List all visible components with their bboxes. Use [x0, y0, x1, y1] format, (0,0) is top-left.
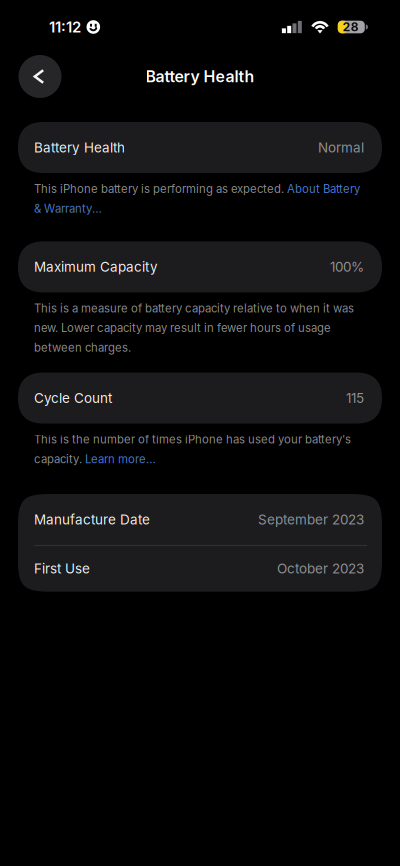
button[interactable]: First Use: [18, 546, 382, 592]
staticText: 11:12: [49, 18, 81, 36]
button[interactable]: Battery Health: [18, 122, 382, 173]
staticText: This is the number of times iPhone has u…: [34, 433, 351, 466]
staticText: 115: [346, 390, 364, 406]
staticText: First Use: [34, 560, 90, 577]
staticText: This iPhone battery is performing as exp…: [34, 182, 360, 215]
staticText: Maximum Capacity: [34, 259, 158, 275]
staticText: This is a measure of battery capacity re…: [34, 301, 354, 354]
staticText: October 2023: [277, 560, 364, 577]
staticText: September 2023: [258, 511, 364, 528]
button[interactable]: Manufacture Date: [18, 494, 382, 545]
staticText: Manufacture Date: [34, 511, 150, 528]
staticText: Battery Health: [145, 67, 254, 86]
staticText: Normal: [318, 139, 364, 156]
staticText: Battery Health: [34, 139, 125, 156]
staticText: 28: [343, 20, 359, 34]
staticText: 100%: [330, 259, 364, 275]
button[interactable]: Back: [18, 55, 61, 98]
staticText: Cycle Count: [34, 390, 112, 406]
button[interactable]: Cycle Count: [18, 373, 382, 424]
button[interactable]: Maximum Capacity: [18, 241, 382, 292]
